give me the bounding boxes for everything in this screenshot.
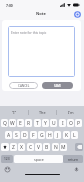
button[interactable]: I'm <box>57 106 84 119</box>
staticText: M <box>61 144 66 151</box>
button[interactable]: V <box>35 143 42 151</box>
button[interactable]: D <box>21 131 28 139</box>
staticText: I'm <box>68 110 74 115</box>
button[interactable]: E <box>17 119 24 127</box>
button[interactable]: T <box>34 119 41 127</box>
staticText: O <box>69 120 73 127</box>
staticText: S <box>15 132 18 139</box>
staticText: CANCEL <box>18 84 30 88</box>
staticText: N <box>54 144 58 151</box>
button[interactable]: Shift <box>1 143 9 151</box>
button[interactable]: Backspace <box>75 143 83 151</box>
staticText: D <box>23 132 27 139</box>
button[interactable]: K <box>63 131 70 139</box>
staticText: P <box>77 120 81 127</box>
staticText: K <box>65 132 69 139</box>
button[interactable]: C <box>27 143 34 151</box>
staticText: U <box>52 120 56 127</box>
staticText: Y <box>44 120 47 127</box>
staticText: The <box>39 110 46 115</box>
button[interactable]: B <box>43 143 50 151</box>
staticText: F <box>32 132 35 139</box>
staticText: 123 <box>4 157 10 161</box>
button[interactable]: Microphone <box>73 166 80 173</box>
staticText: I <box>62 120 64 127</box>
button[interactable]: 123 <box>1 155 13 163</box>
staticText: 7:00 <box>6 3 13 8</box>
button[interactable]: P <box>75 119 82 127</box>
staticText: “I” <box>12 110 17 115</box>
button[interactable]: Account <box>74 11 81 18</box>
button[interactable]: R <box>25 119 32 127</box>
button[interactable]: W <box>9 119 16 127</box>
button[interactable]: Y <box>42 119 49 127</box>
button[interactable]: H <box>46 131 53 139</box>
staticText: H <box>48 132 52 139</box>
staticText: G <box>40 132 44 139</box>
button[interactable]: return <box>63 155 83 163</box>
button[interactable]: SAVE <box>42 82 73 89</box>
staticText: Q <box>3 120 7 127</box>
staticText: Enter note for this topic <box>11 31 47 35</box>
button[interactable]: F <box>30 131 37 139</box>
button[interactable]: G <box>38 131 45 139</box>
staticText: W <box>10 120 15 127</box>
button[interactable]: L <box>71 131 78 139</box>
staticText: return <box>68 157 79 162</box>
button[interactable]: S <box>13 131 20 139</box>
button[interactable]: Q <box>1 119 8 127</box>
button[interactable]: I <box>59 119 66 127</box>
button[interactable]: U <box>50 119 57 127</box>
button[interactable]: J <box>54 131 61 139</box>
button[interactable]: CANCEL <box>9 82 38 89</box>
button[interactable]: A <box>5 131 12 139</box>
button[interactable]: O <box>67 119 74 127</box>
button[interactable]: M <box>60 143 67 151</box>
staticText: R <box>27 120 31 127</box>
button[interactable]: “I” <box>0 106 28 119</box>
staticText: space <box>34 157 44 162</box>
staticText: T <box>36 120 39 127</box>
staticText: C <box>29 144 33 151</box>
button[interactable]: The <box>29 106 56 119</box>
staticText: Note <box>36 11 46 16</box>
button[interactable]: N <box>52 143 59 151</box>
staticText: X <box>20 144 23 151</box>
button[interactable]: Z <box>10 143 17 151</box>
staticText: L <box>73 132 76 139</box>
button[interactable]: space <box>14 155 63 163</box>
staticText: SAVE <box>54 84 62 88</box>
staticText: J <box>57 132 59 139</box>
button[interactable]: Emoji <box>4 166 11 173</box>
staticText: A <box>7 132 11 139</box>
staticText: V <box>37 144 41 151</box>
staticText: B <box>45 144 49 151</box>
button[interactable]: X <box>18 143 25 151</box>
staticText: E <box>19 120 22 127</box>
button[interactable]: Enter note for this topic <box>8 26 75 77</box>
staticText: Z <box>12 144 15 151</box>
